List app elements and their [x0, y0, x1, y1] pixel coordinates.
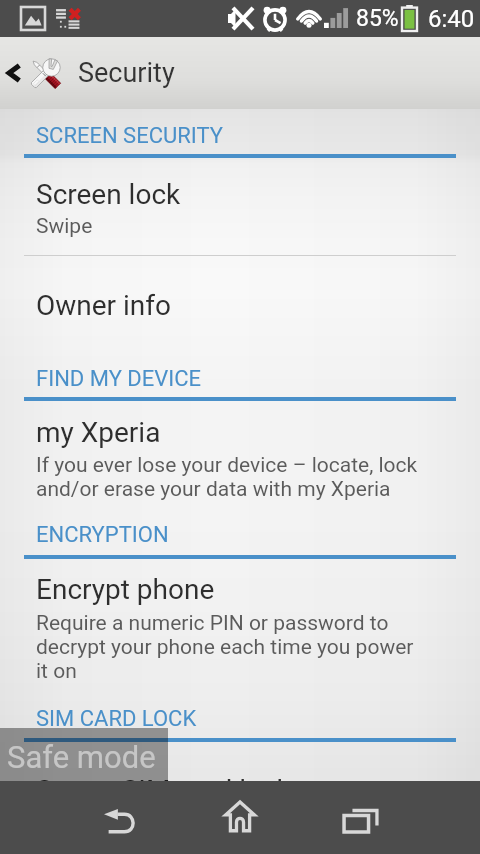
button[interactable]: Navigate up: [0, 37, 480, 109]
staticText: Screen lock: [36, 178, 181, 211]
staticText: ENCRYPTION: [36, 522, 169, 548]
button[interactable]: Home: [200, 781, 280, 854]
staticText: SCREEN SECURITY: [36, 123, 223, 149]
button[interactable]: Recent apps: [320, 781, 400, 854]
staticText: SIM CARD LOCK: [36, 706, 197, 732]
staticText: Safe mode: [7, 739, 156, 775]
staticText: Set up SIM card lock: [36, 774, 291, 807]
staticText: Require a numeric PIN or password to dec…: [36, 611, 414, 683]
staticText: If you ever lose your device – locate, l…: [36, 453, 418, 501]
staticText: Encrypt phone: [36, 573, 215, 606]
staticText: Security: [78, 57, 175, 89]
staticText: 85%: [356, 5, 399, 32]
button[interactable]: Back: [80, 781, 160, 854]
other: Navigate up: [3, 62, 25, 84]
staticText: FIND MY DEVICE: [36, 366, 202, 392]
staticText: my Xperia: [36, 416, 161, 449]
button[interactable]: my Xperia: [0, 416, 480, 501]
button[interactable]: Set up SIM card lock: [0, 774, 480, 807]
button[interactable]: Encrypt phone: [0, 573, 480, 683]
button[interactable]: Owner info: [0, 289, 480, 322]
button[interactable]: Screen lock: [0, 178, 480, 239]
staticText: Swipe: [36, 214, 93, 239]
staticText: Owner info: [36, 289, 172, 322]
staticText: 6:40: [428, 5, 475, 33]
